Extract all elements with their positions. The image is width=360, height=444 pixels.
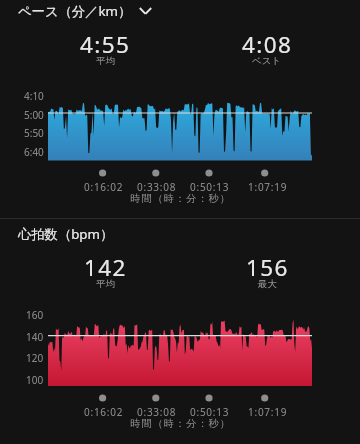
staticText: 1:07:19 (248, 180, 288, 194)
other: Change metric (139, 4, 152, 18)
staticText: 4:55 (80, 29, 131, 60)
staticText: 4:10 (24, 89, 44, 103)
staticText: 1:07:19 (248, 405, 288, 419)
staticText: 5:50 (24, 126, 44, 140)
staticText: 時間（時：分：秒） (130, 192, 231, 205)
staticText: 0:50:13 (190, 405, 230, 419)
staticText: 142 (84, 252, 127, 283)
staticText: 0:16:02 (84, 180, 124, 194)
staticText: 160 (26, 308, 44, 322)
staticText: 0:33:08 (137, 405, 177, 419)
button[interactable]: 心拍数（bpm） (18, 225, 114, 243)
staticText: 時間（時：分：秒） (130, 417, 231, 430)
staticText: 4:08 (242, 29, 293, 60)
button[interactable]: ペース（分／km） (18, 2, 152, 20)
staticText: ベスト (252, 55, 282, 67)
staticText: 156 (246, 252, 289, 283)
staticText: 平均 (96, 55, 115, 67)
staticText: 140 (26, 330, 44, 344)
staticText: 120 (26, 351, 44, 365)
staticText: 5:00 (24, 108, 44, 122)
staticText: 心拍数（bpm） (18, 225, 114, 243)
staticText: 0:50:13 (190, 180, 230, 194)
staticText: 6:40 (24, 145, 44, 159)
staticText: 0:33:08 (137, 180, 177, 194)
staticText: 0:16:02 (84, 405, 124, 419)
staticText: ペース（分／km） (18, 2, 132, 20)
staticText: 平均 (96, 278, 115, 290)
staticText: 最大 (258, 278, 277, 290)
staticText: 100 (26, 373, 44, 387)
